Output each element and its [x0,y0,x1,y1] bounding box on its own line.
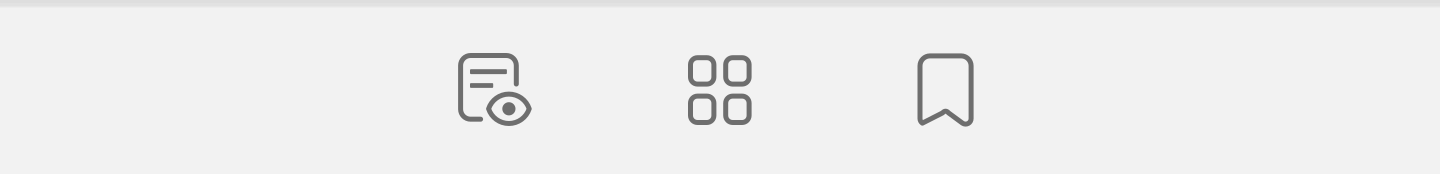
button[interactable]: Grid view [688,55,752,125]
button[interactable]: Preview document [458,53,532,126]
button[interactable]: Bookmark [917,53,974,127]
